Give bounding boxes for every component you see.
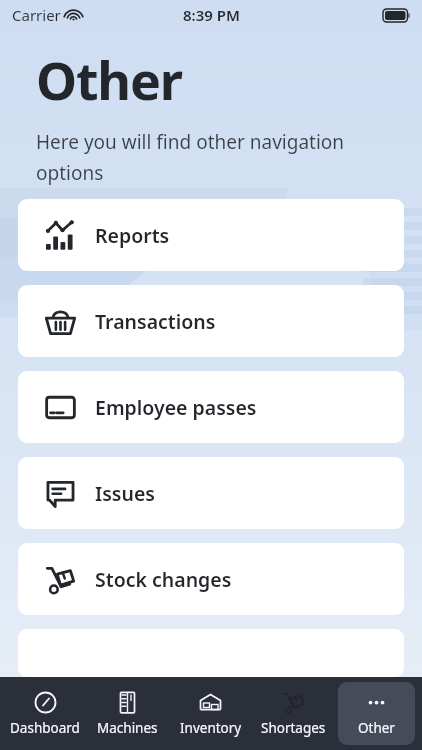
button[interactable]: Inventory — [172, 682, 249, 745]
button[interactable]: Machines — [89, 682, 166, 745]
staticText: Other — [358, 719, 395, 737]
staticText: Reports — [95, 222, 170, 249]
staticText: Shortages — [261, 719, 326, 737]
staticText: Here you will find other navigation opti… — [36, 129, 392, 186]
staticText: Carrier — [12, 5, 61, 25]
staticText: Inventory — [180, 719, 242, 737]
staticText: 8:39 PM — [183, 5, 240, 25]
staticText: Transactions — [95, 308, 216, 335]
button[interactable]: Dashboard — [7, 682, 83, 745]
staticText: Employee passes — [95, 394, 257, 421]
staticText: Stock changes — [95, 566, 232, 593]
button[interactable]: Stock changes — [18, 543, 404, 615]
staticText: Issues — [95, 480, 155, 507]
button[interactable]: Transactions — [18, 285, 404, 357]
staticText: Machines — [97, 719, 158, 737]
button[interactable]: Other — [338, 682, 415, 745]
staticText: Dashboard — [10, 719, 80, 737]
button[interactable]: Employee passes — [18, 371, 404, 443]
button[interactable]: Reports — [18, 199, 404, 271]
button[interactable]: Issues — [18, 457, 404, 529]
staticText: Other — [36, 44, 182, 115]
button[interactable]: Shortages — [255, 682, 332, 745]
